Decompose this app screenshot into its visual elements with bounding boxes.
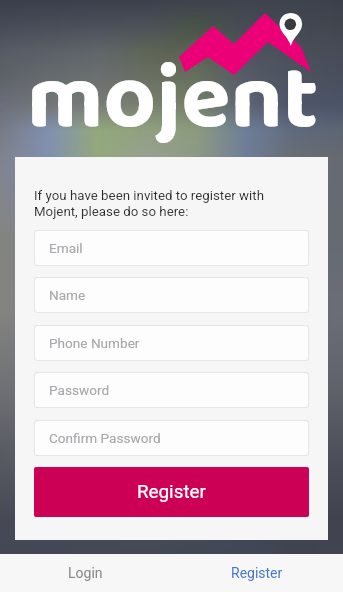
- staticText: Phone Number: [49, 335, 140, 351]
- staticText: Name: [49, 287, 86, 303]
- button[interactable]: Password: [35, 373, 308, 407]
- button[interactable]: Email: [35, 231, 308, 265]
- staticText: Password: [49, 382, 110, 398]
- staticText: Login: [68, 565, 103, 581]
- staticText: mojent: [27, 28, 319, 174]
- button[interactable]: Login: [0, 554, 171, 592]
- staticText: Register: [137, 481, 206, 503]
- button[interactable]: Name: [35, 278, 308, 312]
- button[interactable]: Phone Number: [35, 326, 308, 360]
- button[interactable]: Register: [34, 467, 309, 517]
- button[interactable]: Register: [171, 554, 343, 592]
- button[interactable]: Confirm Password: [35, 421, 308, 455]
- staticText: Register: [231, 565, 283, 581]
- staticText: Confirm Password: [49, 430, 161, 446]
- staticText: Email: [49, 240, 83, 256]
- staticText: If you have been invited to register wit…: [34, 188, 264, 220]
